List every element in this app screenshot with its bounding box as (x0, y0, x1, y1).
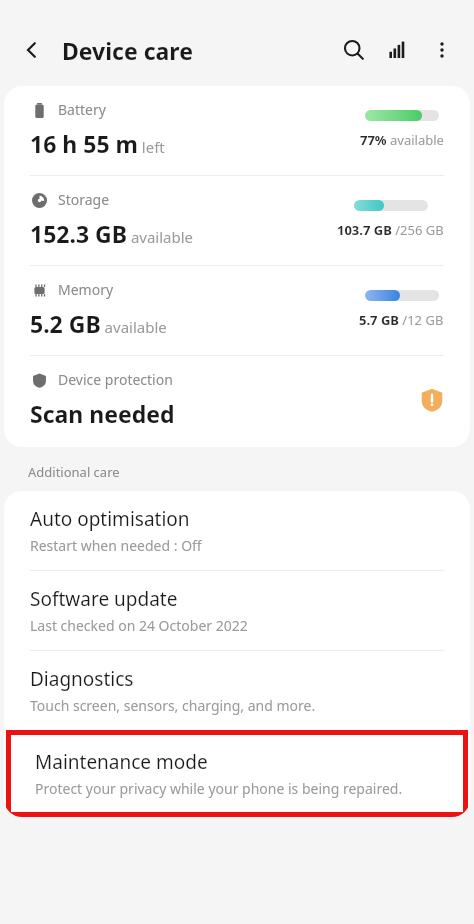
button[interactable]: Search (332, 28, 376, 72)
button[interactable]: Maintenance mode (11, 735, 463, 812)
staticText: Protect your privacy while your phone is… (35, 779, 403, 798)
button[interactable]: Storage (4, 176, 470, 265)
button[interactable]: Back (10, 28, 54, 72)
staticText: Touch screen, sensors, charging, and mor… (30, 696, 316, 715)
button[interactable]: Memory (4, 266, 470, 355)
staticText: Battery (58, 100, 106, 119)
staticText: Last checked on 24 October 2022 (30, 616, 248, 635)
button[interactable]: Device protection (4, 356, 470, 447)
staticText: Additional care (28, 463, 120, 481)
button[interactable]: Diagnostics (4, 651, 470, 730)
staticText: Scan needed (30, 398, 175, 429)
staticText: Storage (58, 190, 110, 209)
button[interactable]: Battery (4, 86, 470, 175)
button[interactable]: Usage statistics (376, 28, 420, 72)
staticText: Restart when needed : Off (30, 536, 202, 555)
staticText: 16 h 55 m left (30, 128, 165, 159)
staticText: Device protection (58, 370, 173, 389)
button[interactable]: Auto optimisation (4, 491, 470, 570)
button[interactable]: Software update (4, 571, 470, 650)
staticText: Maintenance mode (35, 749, 208, 775)
button[interactable]: More options (420, 28, 464, 72)
staticText: 5.7 GB /12 GB (359, 311, 444, 329)
staticText: 77% available (360, 131, 444, 149)
staticText: Device care (62, 35, 193, 66)
staticText: 5.2 GB available (30, 308, 167, 339)
staticText: Software update (30, 586, 178, 612)
staticText: 103.7 GB /256 GB (337, 221, 444, 239)
staticText: Auto optimisation (30, 506, 190, 532)
staticText: 152.3 GB available (30, 218, 194, 249)
staticText: Memory (58, 280, 114, 299)
staticText: Diagnostics (30, 666, 134, 692)
